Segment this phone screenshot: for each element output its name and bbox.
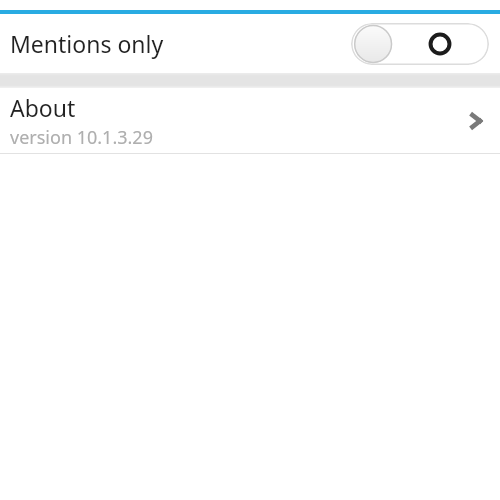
staticText: Mentions only xyxy=(10,28,164,59)
other: About xyxy=(452,97,500,145)
button[interactable]: Mentions only xyxy=(0,14,500,73)
staticText: About xyxy=(10,92,76,123)
button[interactable]: About xyxy=(0,88,500,153)
staticText: version 10.1.3.29 xyxy=(10,125,153,150)
button[interactable]: Mentions only toggle, off xyxy=(351,23,489,65)
